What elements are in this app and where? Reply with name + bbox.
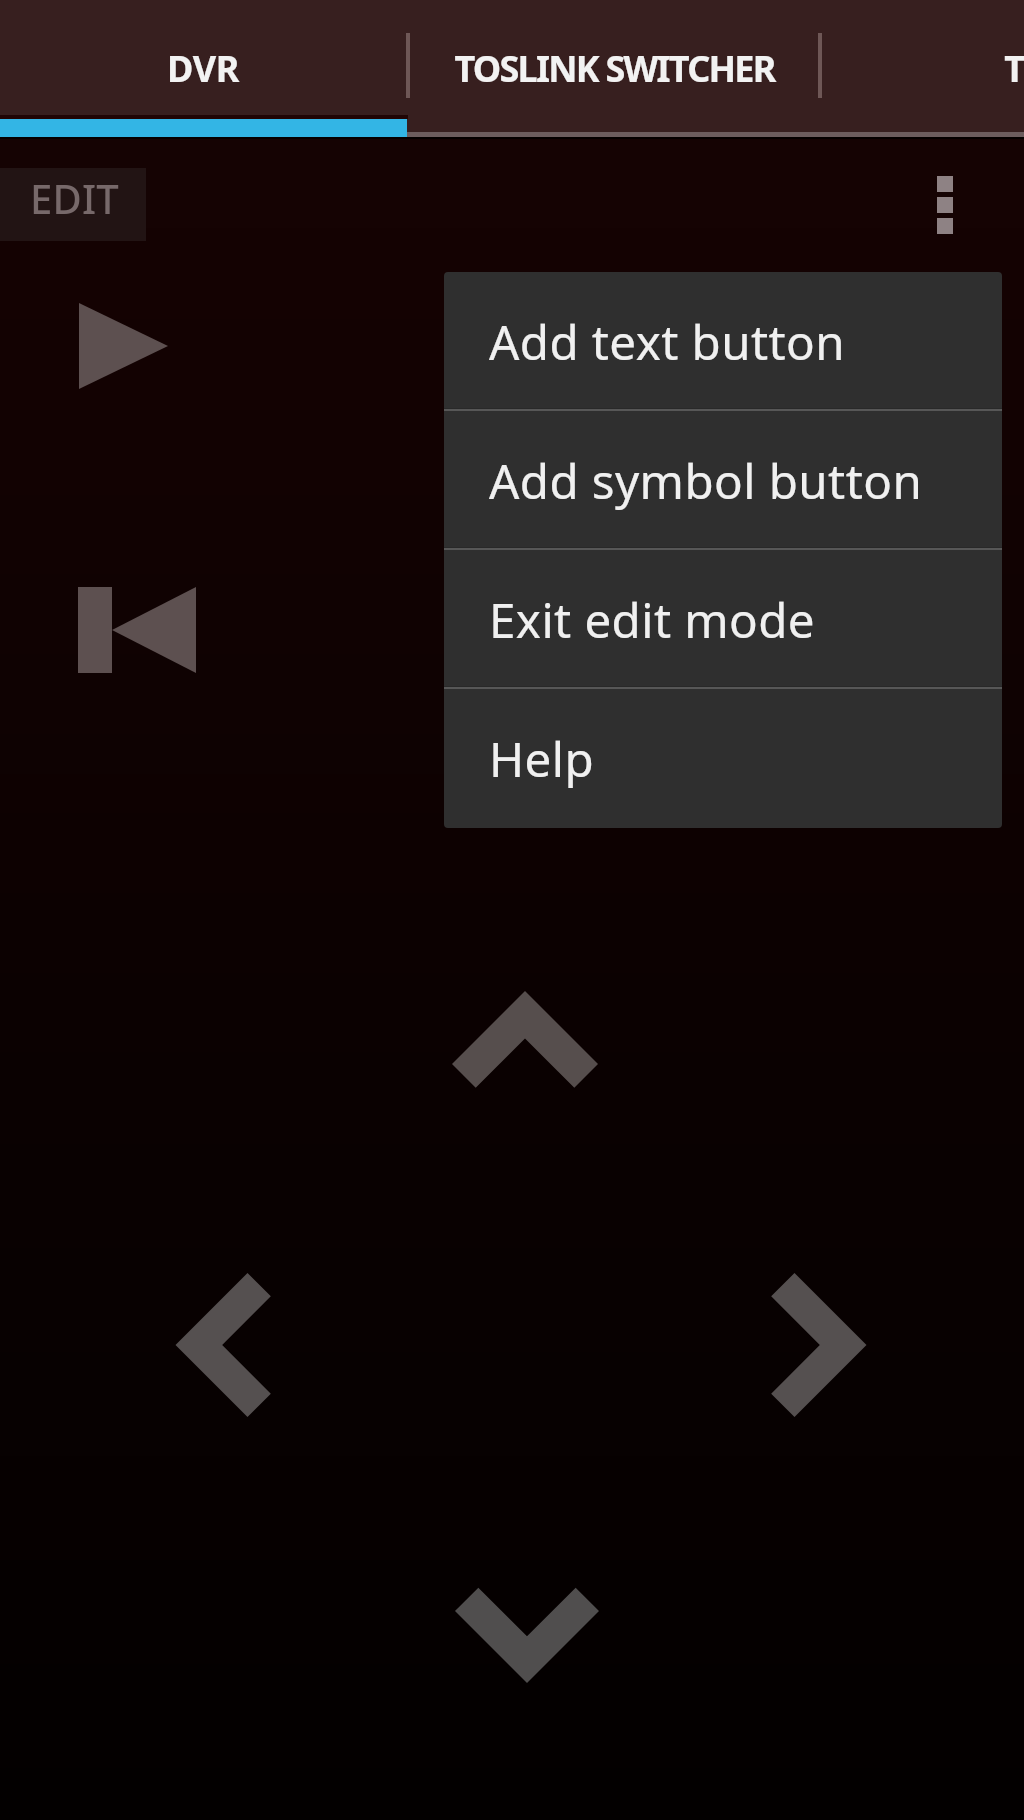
staticText: Add text button — [489, 309, 845, 374]
button[interactable]: Add symbol button — [444, 411, 1002, 550]
button[interactable]: TV — [822, 0, 1024, 118]
button[interactable]: Play — [40, 270, 210, 420]
staticText: Add symbol button — [489, 448, 923, 513]
button[interactable]: Add text button — [444, 272, 1002, 411]
button[interactable]: Up — [430, 963, 620, 1113]
button[interactable]: EDIT — [0, 168, 146, 241]
staticText: TOSLINK SWITCHER — [454, 44, 775, 93]
button[interactable]: DVR — [0, 0, 406, 118]
staticText: EDIT — [30, 171, 119, 225]
button[interactable]: Help — [444, 689, 1002, 828]
staticText: Help — [489, 726, 595, 791]
button[interactable]: More options — [889, 149, 1000, 260]
button[interactable]: Previous — [40, 555, 230, 705]
staticText: TV — [1004, 44, 1024, 93]
button[interactable]: Right — [747, 1245, 892, 1445]
staticText: DVR — [167, 44, 239, 93]
button[interactable]: TOSLINK SWITCHER — [410, 0, 818, 118]
staticText: Exit edit mode — [489, 587, 816, 652]
button[interactable]: Exit edit mode — [444, 550, 1002, 689]
button[interactable]: Down — [432, 1561, 622, 1711]
button[interactable]: Left — [150, 1245, 295, 1445]
